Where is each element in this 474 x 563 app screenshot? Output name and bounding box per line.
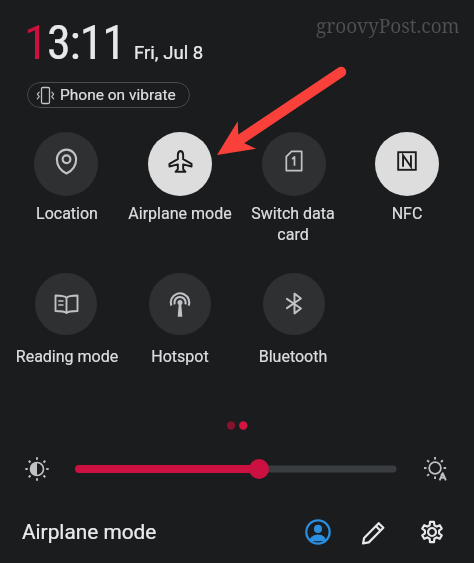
- button[interactable]: Settings: [414, 514, 450, 550]
- button[interactable]: Edit: [356, 514, 392, 550]
- staticText: Bluetooth: [236, 347, 350, 366]
- button[interactable]: [76, 455, 396, 483]
- button[interactable]: User: [300, 514, 336, 550]
- staticText: Hotspot: [123, 347, 237, 366]
- staticText: 1: [24, 14, 47, 70]
- staticText: Fri, Jul 8: [134, 42, 204, 64]
- staticText: Phone on vibrate: [60, 86, 176, 104]
- staticText: groovyPost.com: [316, 13, 460, 39]
- staticText: NFC: [350, 204, 464, 223]
- button[interactable]: Location: [34, 132, 98, 196]
- button[interactable]: Hotspot: [149, 273, 211, 335]
- staticText: Airplane mode: [22, 520, 157, 544]
- button[interactable]: Bluetooth: [263, 273, 325, 335]
- button[interactable]: NFC: [375, 132, 439, 196]
- button[interactable]: Reading mode: [35, 273, 97, 335]
- button[interactable]: Switch data card: [262, 132, 326, 196]
- staticText: Reading mode: [10, 347, 124, 366]
- staticText: 3:11: [47, 14, 125, 70]
- button[interactable]: Phone on vibrate: [27, 82, 190, 108]
- button[interactable]: Airplane mode: [148, 132, 212, 196]
- staticText: Airplane mode: [123, 204, 237, 223]
- staticText: Switch data card: [236, 204, 350, 244]
- staticText: Location: [10, 204, 124, 223]
